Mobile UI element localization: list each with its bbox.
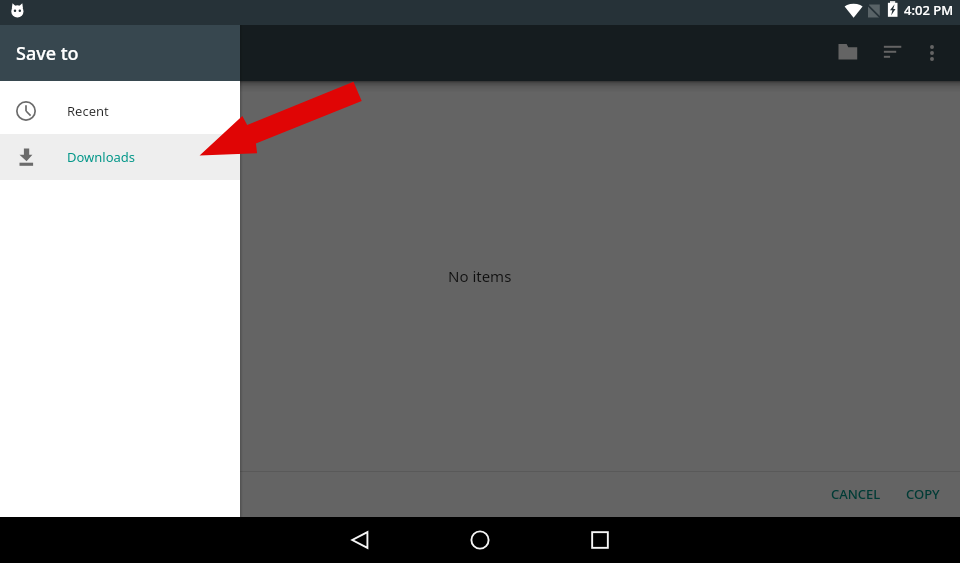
staticText: Downloads <box>67 148 136 166</box>
staticText: Recent <box>67 102 109 120</box>
button[interactable]: COPY <box>898 477 948 511</box>
button[interactable]: Home <box>457 517 503 563</box>
staticText: CANCEL <box>831 485 881 503</box>
button[interactable]: Recent <box>0 88 240 134</box>
button[interactable]: CANCEL <box>823 477 889 511</box>
button[interactable]: New folder <box>827 25 871 81</box>
button[interactable]: Close navigation drawer <box>0 0 960 517</box>
staticText: COPY <box>906 485 940 503</box>
button[interactable]: Recents <box>577 517 623 563</box>
staticText: Save to <box>16 41 79 66</box>
button[interactable]: Sort <box>871 25 915 81</box>
staticText: No items <box>448 266 512 286</box>
button[interactable]: Back <box>337 517 383 563</box>
button[interactable]: Downloads <box>0 134 240 180</box>
button[interactable]: More options <box>910 25 954 81</box>
staticText: 4:02 PM <box>904 1 954 19</box>
